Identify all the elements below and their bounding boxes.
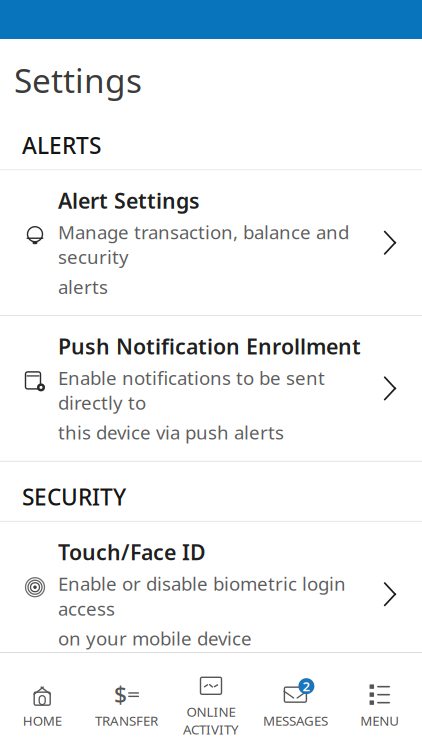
- staticText: Alert Settings: [58, 186, 200, 215]
- staticText: this device via push alerts: [58, 420, 284, 445]
- staticText: Touch/Face ID: [58, 538, 206, 566]
- staticText: MESSAGES: [263, 712, 328, 729]
- button[interactable]: Update Password: [0, 668, 422, 750]
- staticText: SECURITY: [22, 482, 126, 512]
- button[interactable]: $: [84, 674, 169, 729]
- staticText: alerts: [58, 274, 108, 299]
- staticText: on your mobile device: [58, 626, 252, 651]
- staticText: Settings: [14, 58, 142, 102]
- staticText: ALERTS: [22, 130, 101, 160]
- button[interactable]: Push Notification Enrollment: [0, 316, 422, 461]
- button[interactable]: Touch/Face ID: [0, 522, 422, 667]
- button[interactable]: MENU: [338, 674, 422, 729]
- staticText: Manage transaction, balance and security: [58, 220, 349, 269]
- staticText: 2: [302, 677, 310, 695]
- staticText: ACTIVITY: [183, 720, 239, 738]
- staticText: Change your password for online banking: [58, 717, 351, 750]
- staticText: Enable or disable biometric login access: [58, 571, 346, 621]
- button[interactable]: HOME: [0, 674, 84, 729]
- staticText: TRANSFER: [95, 712, 158, 729]
- staticText: $: [114, 680, 127, 710]
- staticText: ONLINE: [186, 703, 235, 720]
- button[interactable]: ONLINE: [169, 665, 253, 738]
- staticText: Update Password: [58, 684, 239, 712]
- button[interactable]: 2: [253, 674, 338, 729]
- staticText: HOME: [23, 712, 62, 729]
- staticText: MENU: [360, 712, 399, 729]
- staticText: Enable notifications to be sent directly…: [58, 365, 325, 415]
- button[interactable]: Alert Settings: [0, 170, 422, 315]
- staticText: Push Notification Enrollment: [58, 332, 361, 360]
